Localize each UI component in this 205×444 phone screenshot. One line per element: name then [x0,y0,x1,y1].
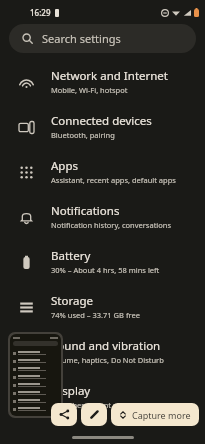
button[interactable]: Edit [81,403,107,426]
staticText: 74% used – 33.71 GB free [51,310,140,320]
staticText: Notifications [51,203,120,219]
button[interactable]: Storage [0,284,205,329]
staticText: Battery [51,248,91,264]
button[interactable] [10,334,61,416]
button[interactable]: Apps [0,149,205,194]
staticText: Notification history, conversations [51,220,172,230]
button[interactable]: Battery [0,239,205,284]
button[interactable]: Capture more [111,403,199,426]
staticText: Assistant, recent apps, default apps [51,175,176,185]
staticText: Bluetooth, pairing [51,130,115,140]
staticText: Mobile, Wi-Fi, hotspot [51,85,128,95]
button[interactable]: Display [0,374,205,419]
staticText: Capture more [132,409,191,421]
staticText: Display [51,383,91,399]
button[interactable]: Sound and vibration [0,329,205,374]
button[interactable]: Notifications [0,194,205,239]
staticText: Connected devices [51,113,152,129]
button[interactable]: Network and Internet [0,59,205,104]
button[interactable]: Share [51,403,77,426]
button[interactable]: Search settings [9,24,196,53]
staticText: Sound and vibration [51,338,161,354]
staticText: Storage [51,293,93,309]
staticText: Search settings [42,31,121,46]
staticText: 30% – About 4 hrs, 58 mins left [51,265,160,275]
staticText: Network and Internet [51,68,169,84]
button[interactable]: Connected devices [0,104,205,149]
staticText: Volume, haptics, Do Not Disturb [51,355,164,365]
staticText: Apps [51,158,79,174]
staticText: 16:29 [30,7,51,18]
staticText: Dark theme, font size, brightness [51,400,168,410]
